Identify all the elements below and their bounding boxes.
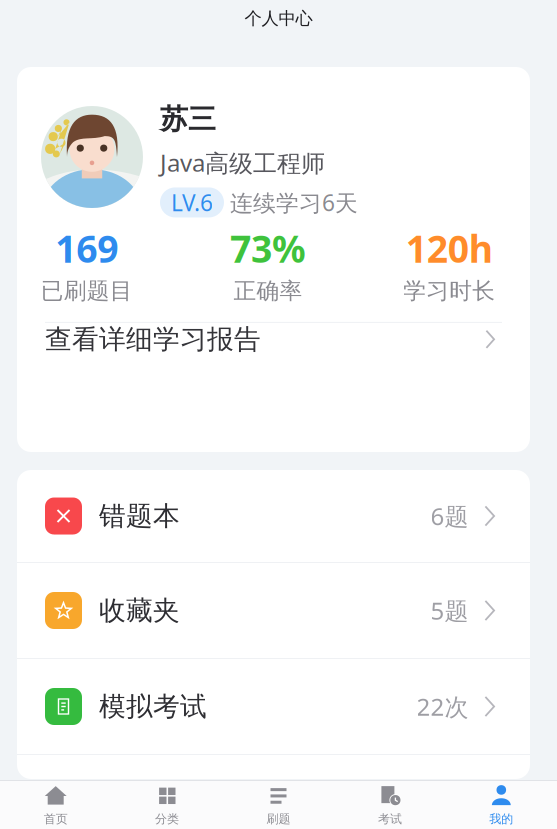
staticText: 学习时长 bbox=[403, 277, 495, 305]
staticText: 22次 bbox=[416, 691, 468, 722]
staticText: 169 bbox=[55, 223, 118, 273]
button[interactable]: 收藏夹 bbox=[17, 563, 530, 658]
button[interactable]: 学习计划 bbox=[17, 755, 530, 829]
staticText: 6题 bbox=[430, 500, 468, 532]
staticText: 查看详细学习报告 bbox=[45, 323, 261, 356]
button[interactable]: 我的 bbox=[446, 781, 557, 829]
staticText: LV.6 bbox=[171, 187, 213, 217]
button[interactable]: 考试 bbox=[334, 781, 446, 829]
staticText: 分类 bbox=[155, 812, 179, 826]
staticText: 120h bbox=[406, 223, 493, 273]
staticText: Java高级工程师 bbox=[160, 146, 325, 178]
staticText: 已刷题目 bbox=[41, 277, 133, 305]
button[interactable]: 查看详细学习报告 bbox=[17, 323, 530, 426]
button[interactable]: 首页 bbox=[0, 781, 111, 829]
staticText: 我的 bbox=[489, 812, 513, 826]
button[interactable]: 刷题 bbox=[223, 781, 334, 829]
staticText: 5题 bbox=[430, 595, 468, 626]
button[interactable]: 模拟考试 bbox=[17, 659, 530, 754]
staticText: 错题本 bbox=[99, 500, 180, 532]
staticText: 刷题 bbox=[266, 812, 290, 826]
staticText: 模拟考试 bbox=[99, 690, 207, 723]
staticText: 连续学习6天 bbox=[230, 187, 358, 217]
staticText: 正确率 bbox=[233, 277, 302, 305]
staticText: 73% bbox=[230, 223, 306, 273]
staticText: 学习计划 bbox=[99, 786, 207, 818]
staticText: 苏三 bbox=[160, 102, 216, 136]
staticText: 考试 bbox=[378, 812, 402, 826]
staticText: 个人中心 bbox=[244, 8, 312, 29]
button[interactable]: 错题本 bbox=[17, 470, 530, 562]
staticText: 首页 bbox=[44, 812, 68, 826]
staticText: 收藏夹 bbox=[99, 594, 180, 627]
button[interactable]: 分类 bbox=[111, 781, 223, 829]
